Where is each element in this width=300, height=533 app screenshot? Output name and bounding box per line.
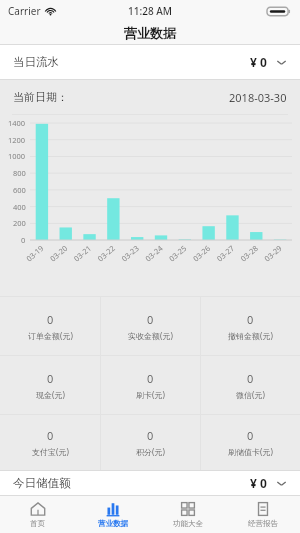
staticText: 积分(元)	[136, 446, 165, 457]
staticText: 刷卡(元)	[136, 389, 165, 400]
staticText: 营业数据	[98, 519, 128, 528]
staticText: 支付宝(元)	[32, 446, 69, 457]
staticText: Carrier	[8, 4, 41, 18]
staticText: 实收金额(元)	[128, 330, 173, 341]
staticText: 0	[147, 312, 154, 327]
staticText: 2018-03-30	[229, 90, 287, 105]
button[interactable]: 0	[101, 356, 200, 414]
button[interactable]: 0	[0, 415, 100, 470]
button[interactable]: 今日储值额	[0, 471, 300, 495]
staticText: 0	[147, 371, 154, 386]
staticText: 0	[247, 312, 254, 327]
staticText: 当日流水	[13, 55, 59, 69]
staticText: 0	[147, 428, 154, 443]
staticText: 订单金额(元)	[28, 330, 73, 341]
staticText: 今日储值额	[13, 476, 71, 490]
staticText: 微信(元)	[236, 389, 265, 400]
button[interactable]: 首页	[0, 496, 75, 533]
button[interactable]: 经营报告	[225, 496, 300, 533]
button[interactable]: 营业数据	[75, 496, 150, 533]
button[interactable]: 0	[101, 415, 200, 470]
staticText: 11:28 AM	[128, 4, 172, 18]
button[interactable]: 功能大全	[150, 496, 225, 533]
staticText: ¥ 0	[250, 475, 267, 491]
staticText: 0	[247, 428, 254, 443]
staticText: 0	[47, 428, 54, 443]
staticText: 0	[47, 371, 54, 386]
staticText: 0	[247, 371, 254, 386]
staticText: 营业数据	[124, 25, 176, 41]
button[interactable]: 0	[0, 356, 100, 414]
staticText: 现金(元)	[36, 389, 65, 400]
staticText: 刷储值卡(元)	[228, 446, 273, 457]
button[interactable]: 0	[201, 415, 300, 470]
staticText: 撤销金额(元)	[228, 330, 273, 341]
button[interactable]: 当日流水	[0, 45, 300, 79]
staticText: 当前日期：	[13, 90, 68, 104]
staticText: 0	[47, 312, 54, 327]
staticText: 首页	[30, 519, 45, 528]
button[interactable]: 0	[201, 297, 300, 355]
staticText: 功能大全	[173, 519, 203, 528]
button[interactable]: 0	[0, 297, 100, 355]
button[interactable]: 0	[201, 356, 300, 414]
staticText: ¥ 0	[250, 54, 267, 70]
button[interactable]: 0	[101, 297, 200, 355]
staticText: 经营报告	[248, 519, 278, 528]
